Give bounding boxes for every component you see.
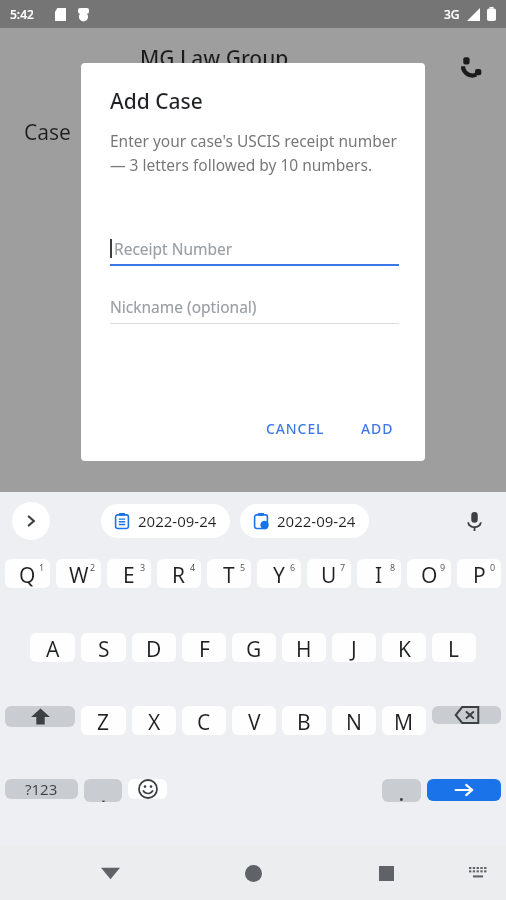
button[interactable]: R <box>157 559 201 588</box>
button[interactable]: T <box>207 559 251 588</box>
button[interactable]: 2022-09-24 <box>101 504 230 538</box>
button[interactable]: A <box>30 633 75 662</box>
button[interactable]: 2022-09-24 <box>240 504 369 538</box>
staticText: 9 <box>440 561 446 573</box>
staticText: G <box>246 635 262 662</box>
staticText: D <box>146 635 162 662</box>
button[interactable]: Q <box>5 559 50 588</box>
staticText: F <box>199 635 210 662</box>
staticText: 6 <box>290 561 296 573</box>
staticText: Receipt Number <box>114 238 233 259</box>
button[interactable]: C <box>182 706 226 735</box>
button[interactable]: G <box>232 633 276 662</box>
button[interactable]: W <box>56 559 101 588</box>
staticText: 2022-09-24 <box>138 511 217 531</box>
staticText: 2 <box>90 561 96 573</box>
staticText: U <box>321 561 337 588</box>
staticText: Y <box>273 561 285 588</box>
button[interactable]: Backspace <box>432 706 501 724</box>
staticText: T <box>223 561 235 588</box>
button[interactable]: Recents <box>364 851 408 895</box>
button[interactable]: B <box>282 706 326 735</box>
staticText: CANCEL <box>266 419 325 438</box>
button[interactable]: M <box>382 706 426 735</box>
button[interactable]: H <box>282 633 326 662</box>
button[interactable]: Switch keyboard <box>458 853 498 893</box>
staticText: I <box>375 561 383 588</box>
staticText: 5 <box>240 561 246 573</box>
staticText: , <box>101 785 106 802</box>
staticText: Z <box>97 708 110 735</box>
button[interactable]: Back <box>88 851 132 895</box>
staticText: A <box>46 635 60 662</box>
button[interactable]: F <box>182 633 226 662</box>
staticText: 0 <box>490 561 496 573</box>
button[interactable]: Call <box>452 46 492 86</box>
staticText: 8 <box>390 561 396 573</box>
staticText: H <box>296 635 312 662</box>
button[interactable]: CANCEL <box>256 410 335 447</box>
button[interactable]: K <box>382 633 426 662</box>
button[interactable]: ?123 <box>5 779 78 799</box>
button[interactable]: L <box>432 633 476 662</box>
staticText: K <box>398 635 411 662</box>
staticText: M <box>394 708 414 735</box>
staticText: MG Law Group <box>140 44 289 73</box>
button[interactable]: Voice input <box>456 503 492 539</box>
staticText: V <box>248 708 261 735</box>
button[interactable]: Nickname (optional) <box>110 288 399 324</box>
staticText: Q <box>19 561 36 588</box>
staticText: Add Case <box>110 87 203 116</box>
button[interactable]: , <box>84 779 122 802</box>
staticText: 4 <box>190 561 196 573</box>
staticText: Case <box>24 118 71 147</box>
staticText: C <box>197 708 211 735</box>
staticText: Nickname (optional) <box>110 296 257 317</box>
staticText: 5:42 <box>10 6 34 22</box>
button[interactable]: Y <box>257 559 301 588</box>
button[interactable]: Home <box>231 851 275 895</box>
staticText: E <box>123 561 135 588</box>
staticText: B <box>297 708 311 735</box>
button[interactable]: E <box>107 559 151 588</box>
staticText: X <box>148 708 161 735</box>
button[interactable]: ADD <box>351 410 404 447</box>
staticText: O <box>421 561 438 588</box>
button[interactable]: Z <box>81 706 126 735</box>
button[interactable]: Receipt Number <box>110 230 399 266</box>
button[interactable]: P <box>457 559 501 588</box>
staticText: 2022-09-24 <box>277 511 356 531</box>
button[interactable]: S <box>81 633 126 662</box>
button[interactable]: Emoji <box>128 779 167 799</box>
button[interactable]: N <box>332 706 376 735</box>
button[interactable]: Expand <box>12 502 50 540</box>
staticText: 7 <box>340 561 346 573</box>
button[interactable]: O <box>407 559 451 588</box>
button[interactable]: D <box>132 633 176 662</box>
button[interactable]: . <box>382 779 421 802</box>
staticText: 1 <box>39 561 45 573</box>
button[interactable]: I <box>357 559 401 588</box>
staticText: J <box>351 635 357 662</box>
button[interactable]: V <box>232 706 276 735</box>
staticText: W <box>69 561 89 588</box>
staticText: L <box>448 635 460 662</box>
staticText: Enter your case's USCIS receipt number —… <box>110 130 399 175</box>
button[interactable]: Enter <box>427 779 501 801</box>
staticText: ?123 <box>25 779 58 799</box>
staticText: S <box>98 635 110 662</box>
button[interactable]: U <box>307 559 351 588</box>
staticText: N <box>346 708 362 735</box>
button[interactable]: X <box>132 706 176 735</box>
staticText: . <box>399 783 404 802</box>
staticText: 3 <box>140 561 146 573</box>
button[interactable]: J <box>332 633 376 662</box>
staticText: P <box>473 561 486 588</box>
button[interactable]: Shift <box>5 706 75 727</box>
staticText: ADD <box>361 419 394 438</box>
staticText: 3G <box>444 6 460 22</box>
staticText: R <box>172 561 186 588</box>
